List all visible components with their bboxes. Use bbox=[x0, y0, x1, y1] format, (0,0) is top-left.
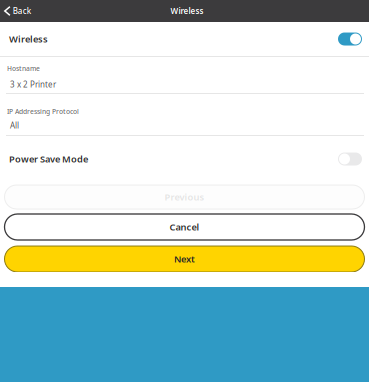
staticText: Next bbox=[174, 253, 195, 265]
button[interactable]: Previous bbox=[4, 185, 364, 209]
staticText: Cancel bbox=[169, 221, 199, 233]
button[interactable]: Back bbox=[0, 0, 38, 22]
button[interactable]: Next bbox=[4, 246, 364, 272]
button[interactable]: Power Save Mode bbox=[338, 152, 362, 165]
staticText: Wireless bbox=[170, 6, 203, 16]
staticText: Hostname bbox=[7, 64, 40, 73]
staticText: Power Save Mode bbox=[9, 153, 88, 165]
button[interactable]: Cancel bbox=[4, 214, 364, 240]
button[interactable]: Wireless bbox=[338, 32, 362, 45]
staticText: All bbox=[10, 120, 19, 131]
staticText: Wireless bbox=[9, 33, 48, 45]
staticText: Back bbox=[13, 6, 31, 16]
staticText: Previous bbox=[164, 191, 204, 203]
staticText: 3 x 2 Printer bbox=[10, 79, 56, 90]
staticText: IP Addressing Protocol bbox=[7, 107, 79, 116]
